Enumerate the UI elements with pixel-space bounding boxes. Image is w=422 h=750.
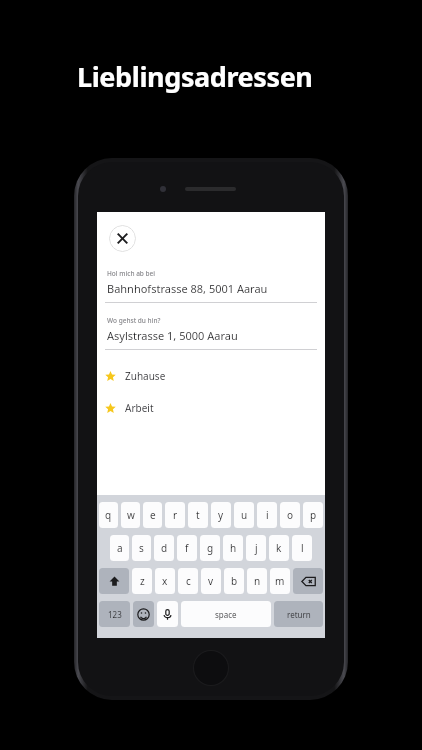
button[interactable]: o [280,502,300,528]
button[interactable]: l [292,535,312,561]
staticText: g [207,541,214,555]
staticText: return [287,609,311,620]
button[interactable]: Dictation [157,601,178,627]
staticText: s [139,541,144,555]
button[interactable]: p [303,502,323,528]
button[interactable]: k [269,535,289,561]
staticText: z [140,574,145,588]
staticText: t [196,508,200,522]
button[interactable]: b [224,568,244,594]
button[interactable]: Emoji [133,601,154,627]
button[interactable]: w [121,502,140,528]
staticText: e [150,508,156,522]
staticText: b [231,574,238,588]
staticText: o [287,508,294,522]
button[interactable]: t [188,502,208,528]
button[interactable]: Hol mich ab bei [105,269,317,303]
button[interactable]: n [247,568,267,594]
staticText: c [186,574,191,588]
button[interactable]: g [200,535,220,561]
button[interactable]: s [132,535,151,561]
staticText: y [218,508,224,522]
button[interactable]: q [99,502,118,528]
button[interactable]: e [143,502,162,528]
button[interactable]: Backspace [293,568,323,594]
staticText: w [127,508,135,522]
button[interactable]: Numbers [99,601,130,627]
staticText: f [185,541,189,555]
button[interactable]: x [155,568,175,594]
staticText: a [117,541,123,555]
button[interactable]: Return [274,601,323,627]
button[interactable]: c [178,568,198,594]
staticText: Hol mich ab bei [107,269,156,278]
staticText: Asylstrasse 1, 5000 Aarau [107,328,238,343]
button[interactable]: Home [193,650,229,686]
button[interactable]: Shift [99,568,129,594]
staticText: j [255,541,258,555]
staticText: Arbeit [125,401,154,415]
staticText: x [162,574,168,588]
staticText: u [241,508,248,522]
button[interactable]: Zuhause [105,369,317,383]
staticText: d [161,541,168,555]
button[interactable]: h [223,535,243,561]
button[interactable]: j [246,535,266,561]
staticText: p [310,508,317,522]
staticText: q [105,508,112,522]
button[interactable]: f [177,535,197,561]
staticText: n [254,574,261,588]
staticText: i [266,508,269,522]
button[interactable]: a [110,535,129,561]
staticText: Zuhause [125,369,166,383]
button[interactable]: space [181,601,271,627]
button[interactable]: Wo gehst du hin? [105,316,317,350]
button[interactable]: v [201,568,221,594]
staticText: Wo gehst du hin? [107,316,161,325]
button[interactable]: m [270,568,290,594]
staticText: space [215,609,237,620]
staticText: Bahnhofstrasse 88, 5001 Aarau [107,281,268,296]
staticText: l [301,541,304,555]
staticText: 123 [108,609,122,620]
button[interactable]: Arbeit [105,401,317,415]
staticText: r [173,508,178,522]
staticText: m [275,574,285,588]
staticText: v [208,574,214,588]
button[interactable]: z [132,568,152,594]
staticText: k [276,541,282,555]
button[interactable]: d [154,535,174,561]
button[interactable]: u [234,502,254,528]
button[interactable]: Close [109,225,136,252]
button[interactable]: y [211,502,231,528]
staticText: h [230,541,237,555]
staticText: Lieblingsadressen [77,58,313,95]
button[interactable]: r [165,502,185,528]
button[interactable]: i [257,502,277,528]
